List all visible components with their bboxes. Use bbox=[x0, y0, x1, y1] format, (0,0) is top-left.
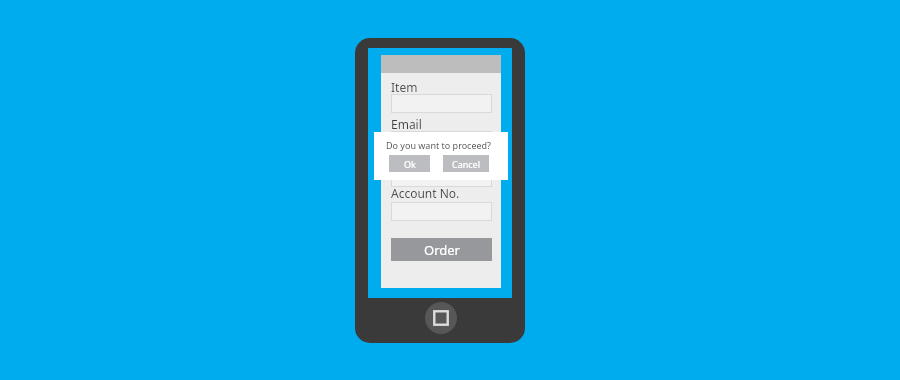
button[interactable]: Order bbox=[391, 238, 492, 261]
staticText: Do you want to proceed? bbox=[386, 139, 492, 151]
staticText: Order bbox=[424, 241, 460, 259]
button[interactable]: Home bbox=[425, 302, 457, 334]
staticText: Phone bbox=[391, 153, 428, 169]
button[interactable] bbox=[391, 131, 492, 150]
button[interactable] bbox=[391, 168, 492, 187]
button[interactable]: Ok bbox=[389, 155, 430, 172]
button[interactable] bbox=[391, 94, 492, 113]
staticText: Ok bbox=[404, 158, 416, 170]
staticText: Cancel bbox=[452, 158, 481, 170]
staticText: Item bbox=[391, 79, 418, 95]
button[interactable]: Cancel bbox=[443, 155, 489, 172]
staticText: Account No. bbox=[391, 185, 460, 201]
staticText: Email bbox=[391, 116, 422, 132]
button[interactable] bbox=[391, 202, 492, 221]
